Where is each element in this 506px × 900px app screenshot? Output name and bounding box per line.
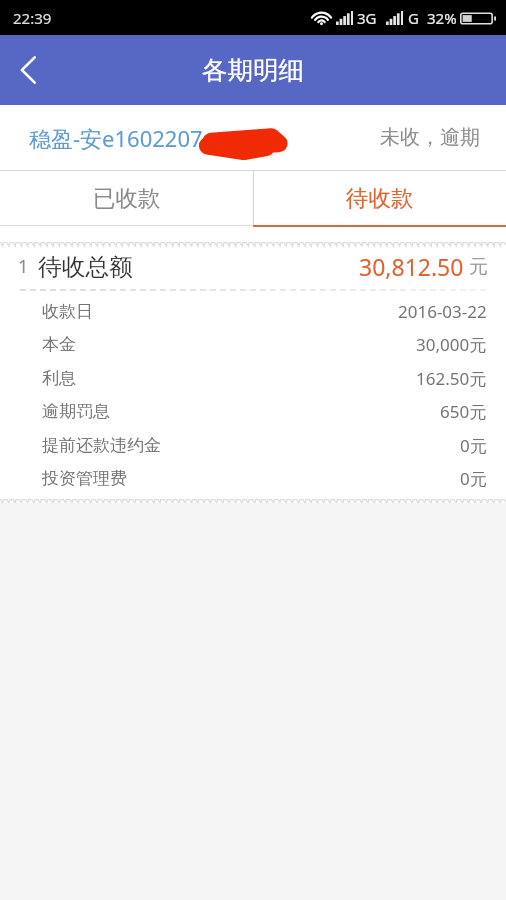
staticText: 2016-03-22 [398,300,487,323]
staticText: 1 [18,254,29,279]
staticText: 提前还款违约金 [42,435,161,456]
staticText: 0元 [460,434,487,457]
staticText: 30,000元 [416,333,487,356]
staticText: 投资管理费 [42,468,127,489]
button[interactable]: 待收款 [253,171,506,225]
staticText: 逾期罚息 [42,401,110,422]
staticText: 待收总额 [38,252,133,282]
staticText: 650元 [440,400,487,423]
staticText: 收款日 [42,301,93,322]
staticText: 利息 [42,368,76,389]
button[interactable]: 投资管理费 [0,462,506,495]
staticText: 22:39 [13,8,52,28]
button[interactable]: 本金 [0,328,506,361]
staticText: 3G [357,8,377,28]
button[interactable]: 逾期罚息 [0,395,506,428]
staticText: G [408,8,419,28]
staticText: 0元 [460,467,487,490]
staticText: 各期明细 [202,54,304,86]
staticText: 待收款 [346,184,414,212]
staticText: 32% [427,8,457,28]
button[interactable]: 1 [0,248,506,285]
button[interactable]: 提前还款违约金 [0,428,506,462]
staticText: 稳盈-安e1602207 [29,123,203,153]
staticText: 未收，逾期 [380,125,480,150]
staticText: 本金 [42,334,76,355]
button[interactable]: Back [0,42,56,98]
button[interactable]: 收款日 [0,294,506,328]
staticText: 已收款 [93,184,161,212]
button[interactable]: 已收款 [0,171,253,225]
staticText: 元 [469,255,488,279]
button[interactable]: 利息 [0,361,506,395]
staticText: 162.50元 [416,367,487,390]
staticText: 30,812.50 [359,251,464,282]
